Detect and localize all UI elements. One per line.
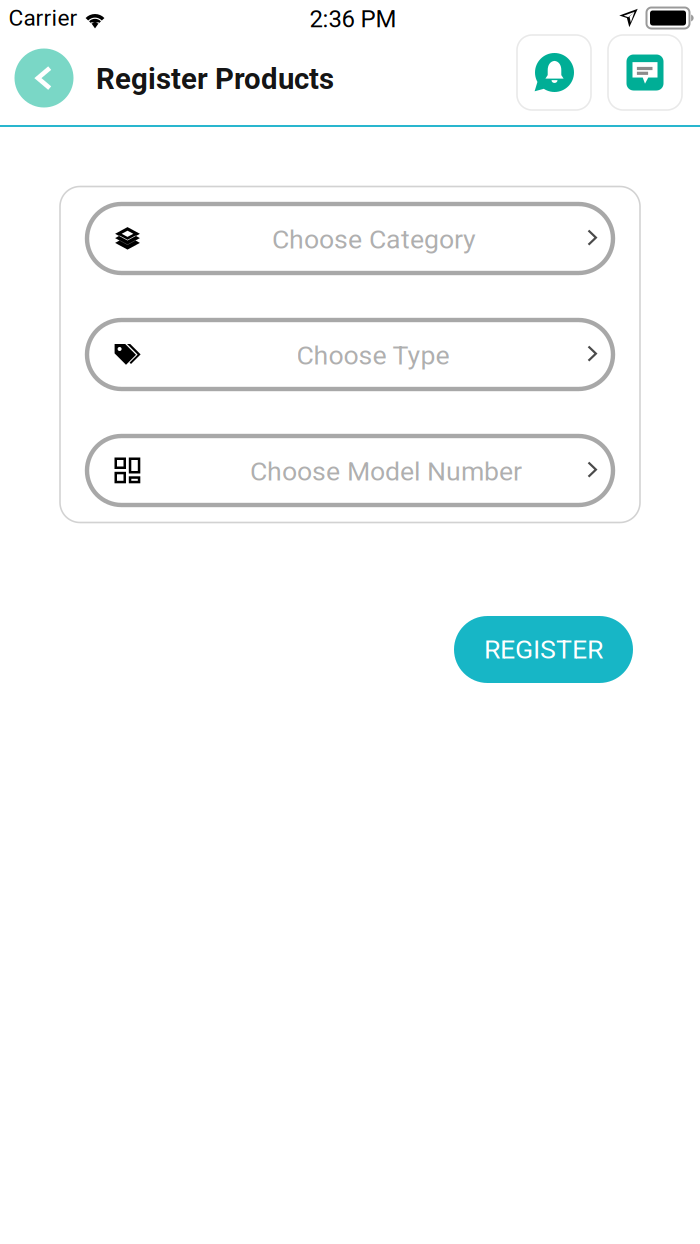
button[interactable]: Choose Category <box>87 204 613 273</box>
button[interactable]: Choose Type <box>87 320 613 389</box>
staticText: Choose Type <box>296 340 449 371</box>
staticText: 2:36 PM <box>309 5 396 33</box>
staticText: Carrier <box>8 5 77 31</box>
staticText: Register Products <box>96 62 334 96</box>
staticText: REGISTER <box>484 634 603 665</box>
staticText: Choose Model Number <box>250 456 522 487</box>
button[interactable]: Choose Model Number <box>87 436 613 505</box>
button[interactable]: Messages <box>608 35 682 110</box>
button[interactable]: REGISTER <box>454 616 633 683</box>
button[interactable]: Back <box>14 48 73 107</box>
button[interactable]: Notifications <box>517 35 591 110</box>
staticText: Choose Category <box>272 224 476 255</box>
